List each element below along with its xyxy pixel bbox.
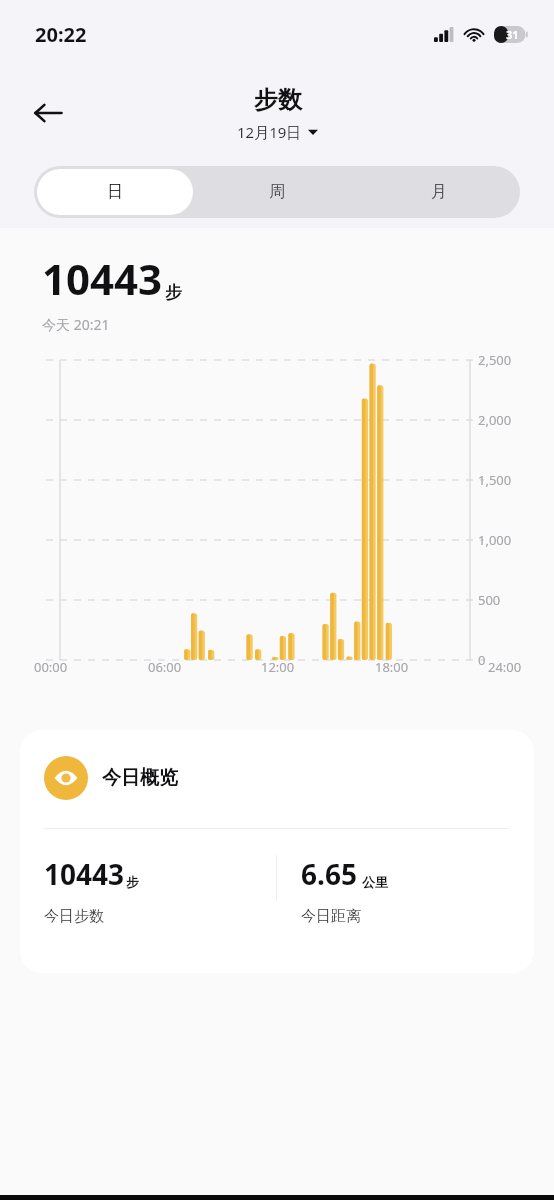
staticText: 500	[478, 591, 501, 609]
staticText: 20:22	[35, 21, 87, 48]
staticText: 24:00	[488, 658, 522, 676]
staticText: 步	[126, 874, 139, 890]
staticText: 今日概览	[102, 766, 178, 790]
staticText: 10443	[42, 250, 163, 307]
button[interactable]: 日	[37, 169, 193, 215]
staticText: 今日步数	[44, 907, 104, 926]
button[interactable]: 今日概览	[20, 730, 534, 973]
staticText: 2,000	[478, 411, 512, 429]
staticText: 周	[269, 182, 285, 202]
staticText: 1,500	[478, 471, 512, 489]
staticText: 日	[107, 182, 123, 202]
staticText: 步	[165, 282, 182, 303]
button[interactable]: 月	[361, 169, 517, 215]
staticText: 6.65	[301, 855, 357, 893]
staticText: 12月19日	[237, 122, 302, 142]
staticText: 今天 20:21	[42, 315, 110, 334]
staticText: 12:00	[261, 658, 295, 676]
staticText: 步数	[254, 85, 302, 115]
button[interactable]: 周	[199, 169, 355, 215]
staticText: 0	[478, 651, 486, 669]
button[interactable]: 12月19日	[237, 122, 318, 142]
staticText: 今日距离	[301, 907, 361, 926]
staticText: 10443	[44, 855, 125, 893]
staticText: 公里	[362, 874, 388, 890]
staticText: 18:00	[375, 658, 409, 676]
staticText: 31	[506, 27, 519, 42]
staticText: 00:00	[34, 658, 68, 676]
staticText: 1,000	[478, 531, 512, 549]
staticText: 06:00	[148, 658, 182, 676]
button[interactable]: Back	[22, 87, 74, 139]
staticText: 2,500	[478, 351, 512, 369]
staticText: 月	[431, 182, 447, 202]
